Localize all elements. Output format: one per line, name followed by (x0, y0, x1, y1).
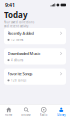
staticText: Favorite Songs (7, 71, 32, 76)
button[interactable]: Favorite Songs (4, 68, 66, 85)
staticText: Home (5, 113, 13, 117)
staticText: Radio (40, 113, 48, 117)
button[interactable]: Radio (35, 105, 52, 119)
staticText: Browse (21, 113, 31, 117)
staticText: Recently Added (7, 31, 33, 36)
button[interactable]: Library (52, 105, 70, 119)
button[interactable]: Home (0, 105, 17, 119)
staticText: 4 albums (11, 58, 23, 62)
staticText: 128 songs (11, 79, 26, 82)
staticText: Library (57, 113, 65, 117)
button[interactable]: Recently Added (4, 28, 66, 44)
button[interactable]: Browse (17, 105, 35, 119)
staticText: and recent activity (4, 24, 28, 28)
staticText: 9:41 (5, 1, 15, 9)
staticText: Your saved collections (4, 20, 34, 24)
staticText: Downloaded Music (7, 51, 40, 56)
staticText: 12 items (11, 38, 23, 42)
button[interactable]: Downloaded Music (4, 48, 66, 65)
staticText: Today (4, 9, 28, 20)
